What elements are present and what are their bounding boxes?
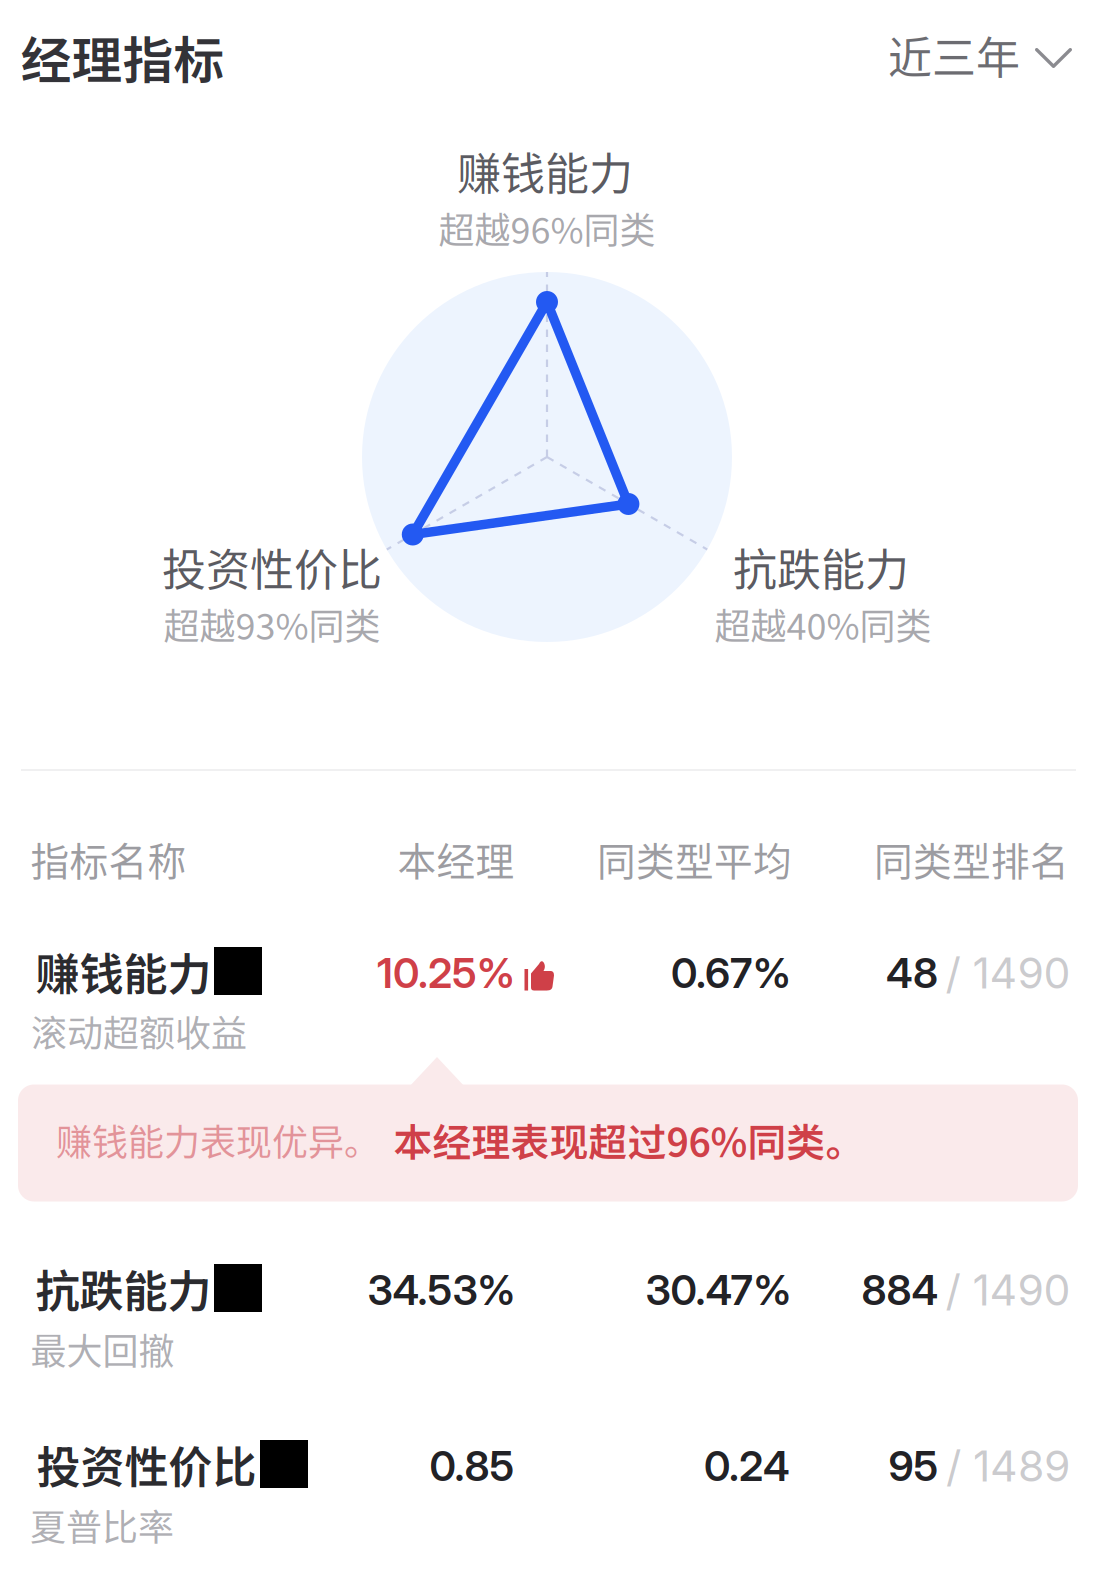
staticText: 超越96%同类 [438,202,655,254]
staticText: 经理指标 [20,20,224,94]
staticText: 滚动超额收益 [31,1005,247,1057]
staticText: 本经理 [397,831,514,887]
button[interactable]: 投资性价比 [30,1422,310,1506]
staticText: 48 [886,948,938,998]
staticText: 指标名称 [30,831,186,887]
button[interactable]: 抗跌能力 [29,1246,265,1330]
staticText: 投资性价比 [36,1432,256,1496]
staticText: 赚钱能力 [457,139,633,203]
staticText: 超越40%同类 [714,598,931,650]
staticText: 10.25% [377,948,515,998]
staticText: 最大回撤 [30,1323,174,1375]
staticText: 超越93%同类 [163,598,380,650]
staticText: 同类型平均 [597,831,792,887]
staticText: 30.47% [645,1265,791,1315]
staticText: 抗跌能力 [733,535,909,599]
staticText: 赚钱能力 [35,939,211,1003]
staticText: 夏普比率 [30,1499,174,1551]
staticText: 投资性价比 [162,535,382,599]
staticText: 0.24 [704,1441,790,1491]
staticText: / 1490 [945,1264,1070,1316]
staticText: 抗跌能力 [35,1256,211,1320]
staticText: 34.53% [367,1265,515,1315]
staticText: / 1490 [945,947,1070,999]
staticText: / 1489 [946,1440,1070,1492]
staticText: 0.85 [429,1441,514,1491]
staticText: 0.67% [671,948,791,998]
staticText: 本经理表现超过96%同类。 [393,1112,864,1168]
staticText: 884 [861,1265,938,1315]
staticText: 同类型排名 [874,831,1069,887]
button[interactable]: 赚钱能力 [29,929,265,1013]
staticText: 赚钱能力表现优异。 [56,1114,380,1166]
staticText: 95 [888,1441,938,1491]
button[interactable]: 近三年 [872,7,1088,103]
staticText: 近三年 [888,23,1020,87]
